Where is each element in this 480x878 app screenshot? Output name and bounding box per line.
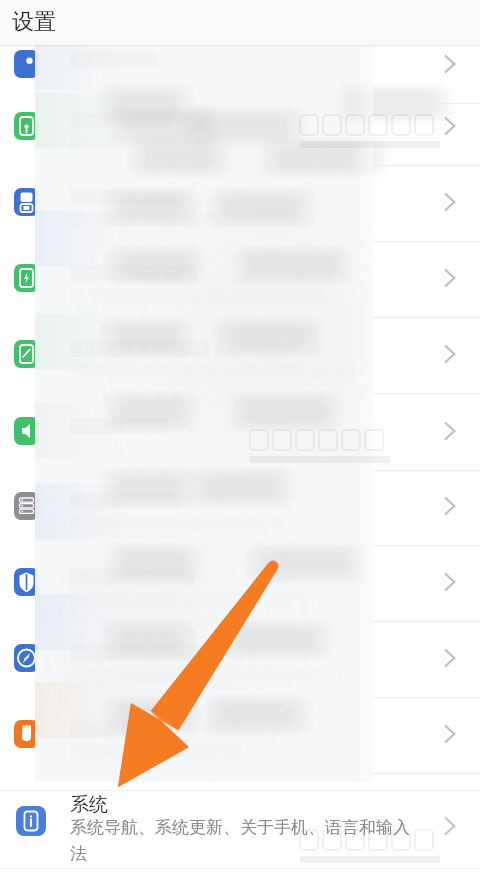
staticText: 系统导航、系统更新、关于手机、语言和输入法: [70, 817, 422, 873]
staticText: 系统: [70, 793, 108, 817]
staticText: 设置: [12, 8, 56, 36]
other: 指向系统的箭头标注: [0, 0, 480, 878]
button[interactable]: 系统: [0, 790, 480, 878]
